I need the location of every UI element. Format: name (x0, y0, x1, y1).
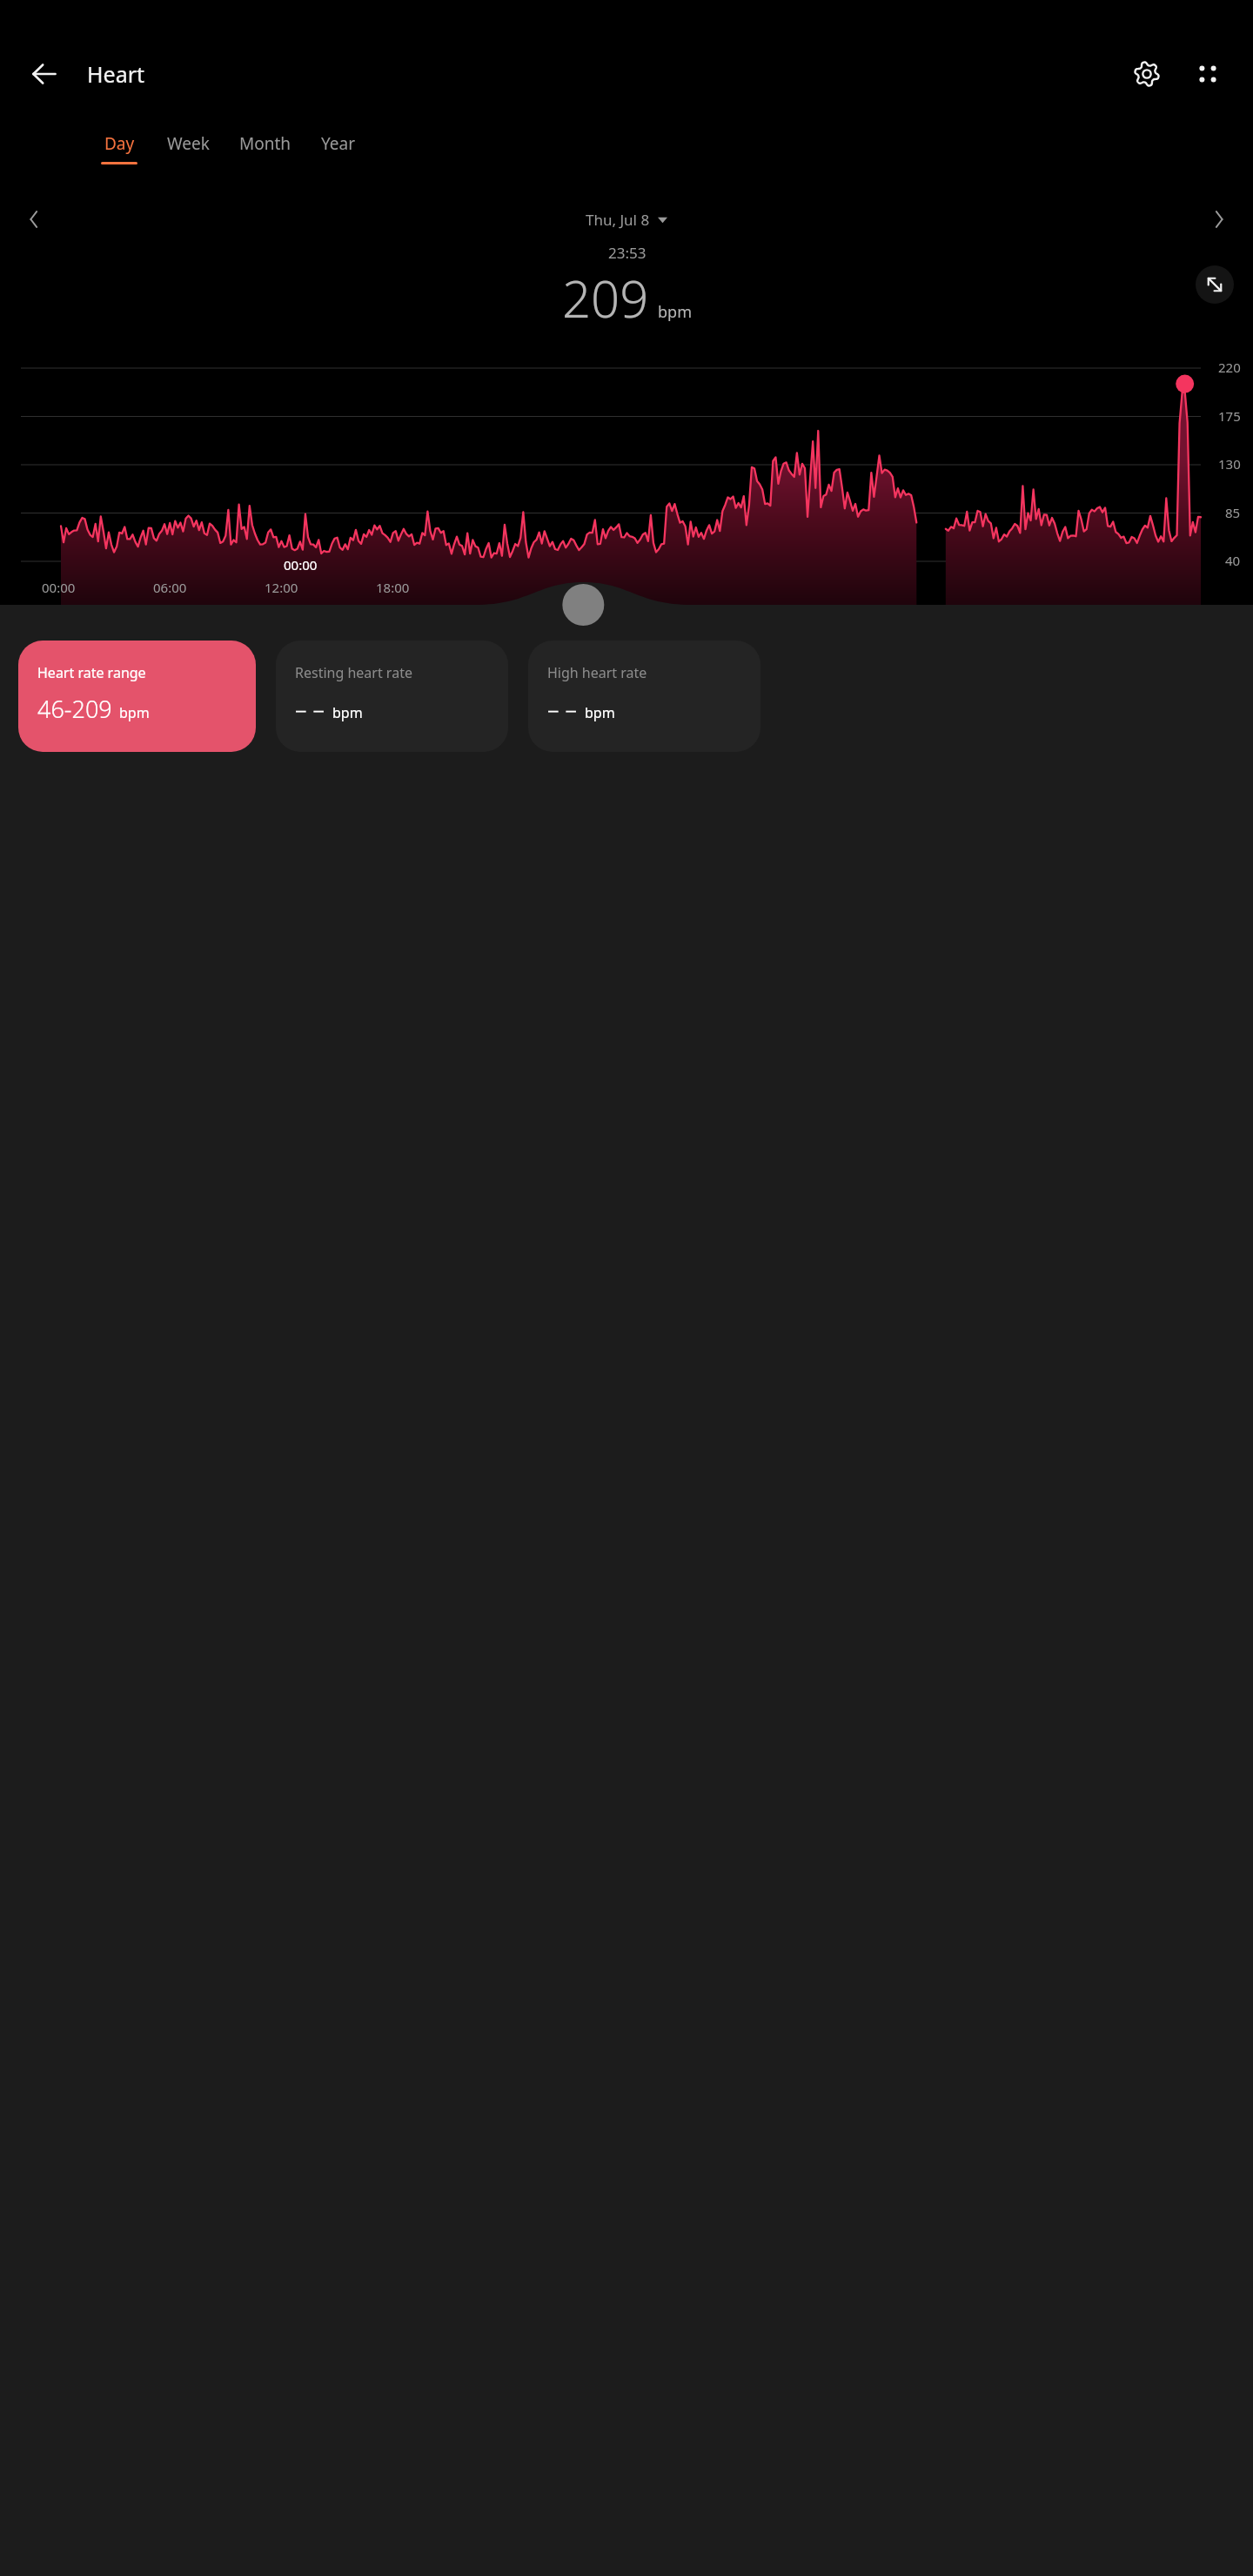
staticText: 00:00 (42, 579, 76, 596)
staticText: – – (547, 693, 578, 725)
staticText: Thu, Jul 8 (586, 210, 650, 230)
staticText: 00:00 (284, 556, 318, 574)
staticText: bpm (658, 301, 692, 323)
staticText: – – (295, 693, 325, 725)
staticText: Resting heart rate (295, 663, 412, 682)
button[interactable]: Thu, Jul 8 (579, 207, 674, 232)
button[interactable]: Day (92, 131, 146, 166)
button[interactable]: Year (312, 131, 365, 166)
staticText: bpm (332, 703, 363, 722)
button[interactable]: More options (1182, 48, 1234, 100)
staticText: Day (104, 132, 135, 155)
button[interactable]: Back (21, 50, 68, 97)
button[interactable]: Resting heart rate (276, 641, 508, 752)
button[interactable]: Next day (1196, 199, 1243, 239)
button[interactable]: Month (231, 131, 300, 166)
staticText: bpm (119, 703, 150, 722)
staticText: 40 (1225, 552, 1241, 569)
staticText: 130 (1218, 455, 1241, 473)
staticText: 12:00 (265, 579, 298, 596)
button[interactable]: Previous day (10, 199, 57, 239)
staticText: 175 (1218, 407, 1241, 425)
button[interactable]: Heart rate range (18, 641, 256, 752)
button[interactable]: High heart rate (528, 641, 761, 752)
staticText: bpm (585, 703, 615, 722)
staticText: 06:00 (153, 579, 187, 596)
staticText: Week (167, 132, 210, 155)
staticText: 46-209 (37, 693, 112, 725)
staticText: Heart rate range (37, 663, 146, 682)
staticText: Month (239, 132, 291, 155)
button[interactable]: Settings (1121, 48, 1173, 100)
staticText: 85 (1225, 504, 1241, 521)
staticText: 220 (1218, 359, 1241, 376)
button[interactable]: Week (158, 131, 218, 166)
button[interactable]: Expand chart (1196, 265, 1234, 304)
staticText: 209 (562, 264, 649, 332)
staticText: Year (321, 132, 356, 155)
staticText: 23:53 (608, 243, 647, 263)
staticText: Heart (87, 59, 145, 89)
staticText: High heart rate (547, 663, 647, 682)
staticText: 18:00 (376, 579, 410, 596)
